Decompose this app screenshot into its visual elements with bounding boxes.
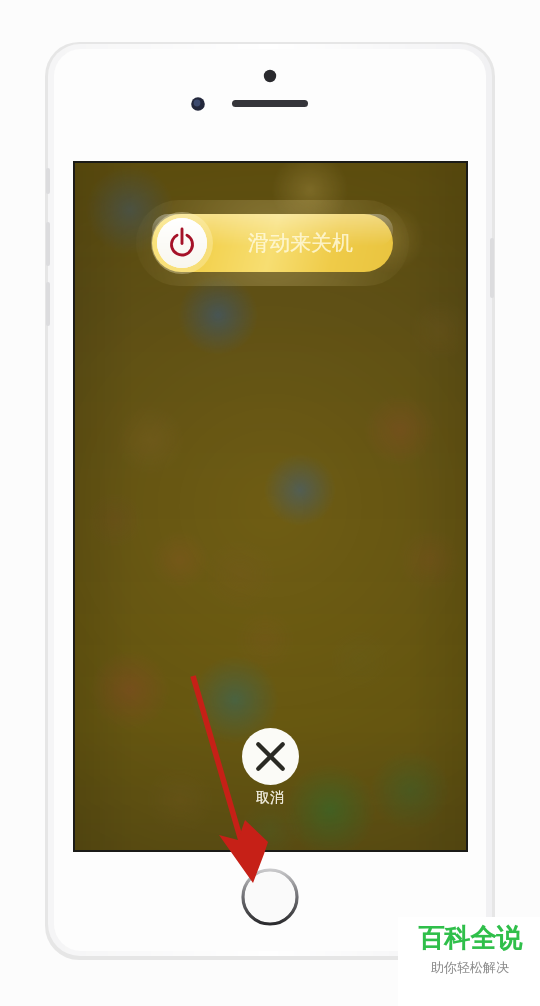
button[interactable]: 滑动来关机	[152, 214, 393, 272]
staticText: 滑动来关机	[248, 230, 353, 256]
button[interactable]: 取消	[222, 728, 318, 812]
staticText: 百科全说	[418, 922, 522, 955]
staticText: 助你轻松解决	[431, 959, 509, 975]
staticText: 取消	[256, 789, 284, 807]
